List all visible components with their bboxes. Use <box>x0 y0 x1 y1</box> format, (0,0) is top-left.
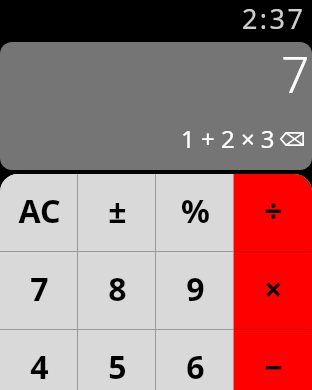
staticText: % <box>181 189 210 233</box>
button[interactable]: 8 <box>78 252 156 330</box>
button[interactable]: Backspace <box>279 128 305 150</box>
staticText: AC <box>18 189 61 233</box>
staticText: 4 <box>30 345 49 389</box>
button[interactable]: % <box>156 174 234 252</box>
staticText: × <box>264 267 283 311</box>
staticText: 8 <box>108 267 127 311</box>
staticText: 9 <box>186 267 205 311</box>
staticText: ÷ <box>264 189 283 233</box>
staticText: 7 <box>30 267 49 311</box>
button[interactable]: 4 <box>0 330 78 390</box>
button[interactable]: 5 <box>78 330 156 390</box>
staticText: 7 <box>281 42 310 108</box>
button[interactable]: ± <box>78 174 156 252</box>
staticText: 1 + 2 × 3 <box>181 122 275 155</box>
staticText: ± <box>108 189 127 233</box>
staticText: 6 <box>186 345 205 389</box>
button[interactable]: 6 <box>156 330 234 390</box>
button[interactable]: 9 <box>156 252 234 330</box>
button[interactable]: AC <box>0 174 78 252</box>
staticText: 2:37 <box>242 0 306 37</box>
button[interactable]: ÷ <box>234 174 312 252</box>
staticText: 5 <box>108 345 127 389</box>
button[interactable]: − <box>234 330 312 390</box>
staticText: − <box>264 345 283 389</box>
button[interactable]: × <box>234 252 312 330</box>
button[interactable]: 7 <box>0 252 78 330</box>
